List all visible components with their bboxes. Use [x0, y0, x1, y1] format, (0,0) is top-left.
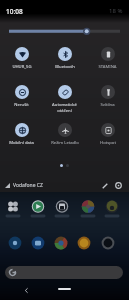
- button[interactable]: UHUR_5G: [0, 38, 43, 76]
- staticText: Svítilna: [100, 102, 115, 108]
- staticText: 18 %: [109, 7, 123, 15]
- button[interactable]: Bluetooth: [43, 38, 86, 76]
- button[interactable]: Edit tiles: [98, 179, 111, 192]
- button[interactable]: Settings: [112, 179, 125, 192]
- staticText: Nerušit: [14, 102, 29, 108]
- staticText: Automatické otáčení: [45, 102, 84, 113]
- button[interactable]: STAMINA: [86, 38, 129, 76]
- button[interactable]: Svítilna: [86, 76, 129, 114]
- button[interactable]: Mobilní data: [0, 114, 43, 152]
- staticText: Režim Letadlo: [51, 140, 79, 146]
- button[interactable]: Back: [20, 280, 32, 300]
- button[interactable]: Search: [5, 266, 123, 279]
- button[interactable]: Režim Letadlo: [43, 114, 86, 152]
- staticText: UHUR_5G: [12, 64, 32, 70]
- staticText: Mobilní data: [9, 140, 34, 146]
- staticText: Vodafone CZ: [13, 182, 43, 189]
- button[interactable]: Automatické otáčení: [43, 76, 86, 114]
- button[interactable]: Hotspot: [86, 114, 129, 152]
- staticText: Bluetooth: [55, 64, 75, 70]
- staticText: STAMINA: [98, 64, 117, 70]
- button[interactable]: Nerušit: [0, 76, 43, 114]
- staticText: 10:08: [6, 7, 23, 16]
- staticText: Hotspot: [100, 140, 116, 146]
